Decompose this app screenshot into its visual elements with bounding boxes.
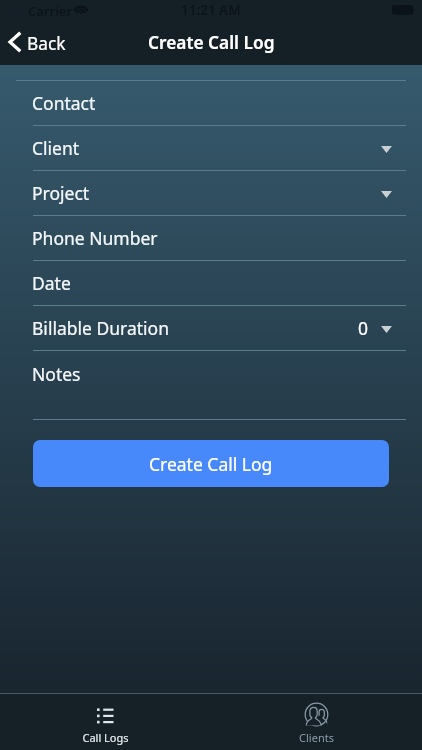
staticText: Create Call Log xyxy=(149,452,273,476)
staticText: Client xyxy=(32,136,80,160)
staticText: Project xyxy=(32,181,90,205)
button[interactable]: Contact xyxy=(0,81,422,125)
staticText: Clients xyxy=(299,730,334,745)
staticText: Billable Duration xyxy=(32,316,169,340)
button[interactable]: Billable Duration xyxy=(0,306,422,350)
button[interactable]: Call Logs xyxy=(0,693,211,750)
staticText: Contact xyxy=(32,91,96,115)
button[interactable]: Back xyxy=(0,22,78,65)
staticText: Back xyxy=(27,32,66,56)
staticText: Create Call Log xyxy=(148,31,275,55)
button[interactable]: Phone Number xyxy=(0,216,422,260)
button[interactable]: Create Call Log xyxy=(33,440,389,487)
staticText: Carrier xyxy=(28,2,73,20)
staticText: 0 xyxy=(358,316,369,340)
staticText: Phone Number xyxy=(32,226,158,250)
staticText: 11:21 AM xyxy=(181,1,241,19)
button[interactable]: Clients xyxy=(211,693,422,750)
staticText: Notes xyxy=(32,362,81,386)
staticText: Date xyxy=(32,271,71,295)
button[interactable]: Notes xyxy=(0,351,422,419)
button[interactable]: Date xyxy=(0,261,422,305)
staticText: Call Logs xyxy=(82,730,129,745)
button[interactable]: Client xyxy=(0,126,422,170)
button[interactable]: Project xyxy=(0,171,422,215)
